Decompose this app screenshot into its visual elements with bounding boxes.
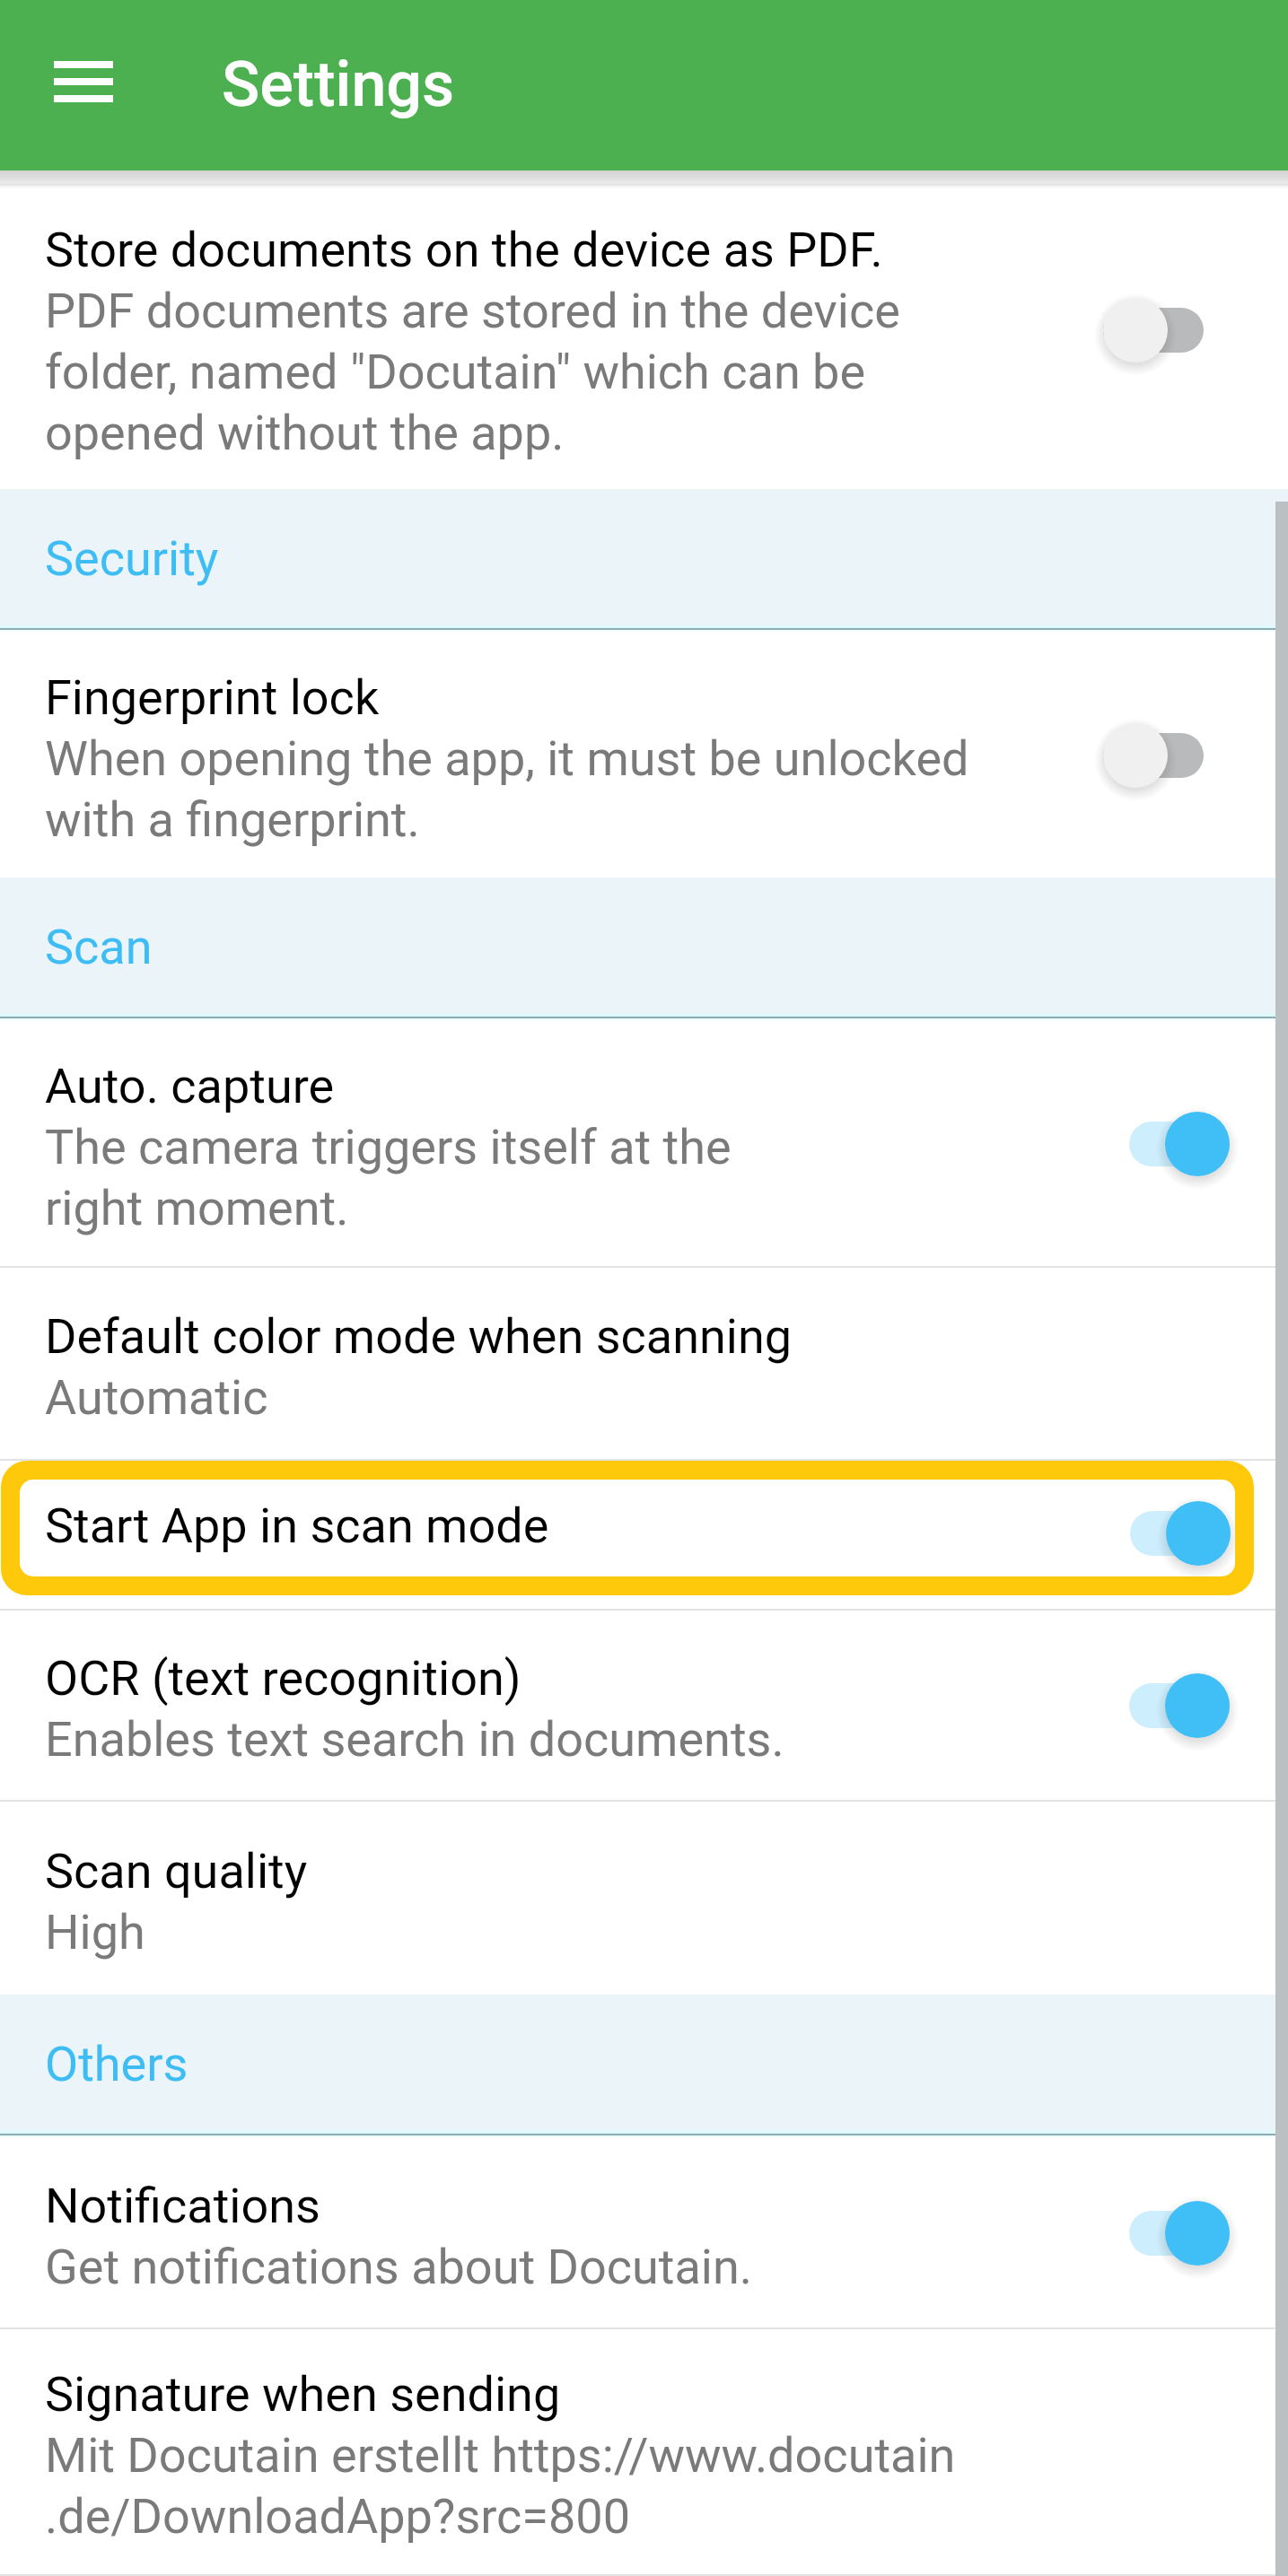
button[interactable]: Open navigation menu: [32, 32, 131, 131]
button[interactable]: OCR (text recognition) Enables text sear…: [0, 1611, 1288, 1800]
button[interactable]: Toggle Fingerprint lock: [1084, 702, 1249, 809]
staticText: Default color mode when scanning Automat…: [45, 1305, 793, 1427]
button[interactable]: Notifications Get notifications about Do…: [0, 2138, 1288, 2327]
button[interactable]: Toggle Auto. capture: [1084, 1090, 1249, 1198]
button[interactable]: Auto. capture The camera triggers itself…: [0, 1021, 1288, 1266]
staticText: Security: [45, 530, 219, 587]
staticText: Fingerprint lock When opening the app, i…: [45, 666, 969, 849]
staticText: Signature when sending Mit Docutain erst…: [45, 2362, 956, 2545]
staticText: Others: [45, 2036, 188, 2092]
button[interactable]: Default color mode when scanning Automat…: [0, 1268, 1288, 1459]
staticText: Auto. capture The camera triggers itself…: [45, 1054, 732, 1237]
button[interactable]: Store documents on the device as PDF. PD…: [0, 170, 1288, 489]
button[interactable]: Start App in scan mode: [20, 1480, 1235, 1576]
staticText: Settings: [222, 48, 455, 121]
button[interactable]: Toggle Notifications: [1084, 2179, 1249, 2287]
staticText: Scan quality High: [45, 1839, 308, 1961]
button[interactable]: Signature when sending Mit Docutain erst…: [0, 2329, 1288, 2574]
staticText: Store documents on the device as PDF. PD…: [45, 218, 900, 462]
staticText: Notifications Get notifications about Do…: [45, 2174, 752, 2296]
button[interactable]: Fingerprint lock When opening the app, i…: [0, 633, 1288, 878]
button[interactable]: Toggle OCR (text recognition): [1084, 1652, 1249, 1760]
staticText: Scan: [45, 919, 153, 975]
staticText: Start App in scan mode: [45, 1498, 549, 1554]
button[interactable]: Scan quality High: [0, 1802, 1288, 1995]
staticText: OCR (text recognition) Enables text sear…: [45, 1646, 784, 1768]
button[interactable]: Toggle Store documents on the device as …: [1084, 276, 1249, 384]
button[interactable]: Toggle Start App in scan mode: [1081, 1480, 1235, 1576]
